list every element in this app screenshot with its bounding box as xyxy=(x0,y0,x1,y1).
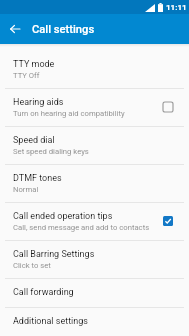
staticText: 11:11 xyxy=(166,3,187,12)
staticText: Call ended operation tips xyxy=(13,211,113,222)
staticText: Call Barring Settings xyxy=(13,249,95,260)
button[interactable]: Call Barring Settings xyxy=(0,241,189,279)
button[interactable]: Speed dial xyxy=(0,127,189,165)
button[interactable]: Toggle Call ended operation tips xyxy=(162,215,173,226)
button[interactable]: Additional settings xyxy=(0,308,189,336)
staticText: Call settings xyxy=(32,23,95,36)
staticText: Normal xyxy=(13,185,39,194)
staticText: Additional settings xyxy=(13,316,88,327)
button[interactable]: Toggle Hearing aids xyxy=(162,101,173,112)
staticText: TTY mode xyxy=(13,59,55,70)
staticText: Turn on hearing aid compatibility xyxy=(13,109,125,118)
staticText: Set speed dialing keys xyxy=(13,147,89,156)
staticText: TTY Off xyxy=(13,71,40,80)
button[interactable]: DTMF tones xyxy=(0,165,189,203)
button[interactable]: Call forwarding xyxy=(0,279,189,308)
staticText: Hearing aids xyxy=(13,97,64,108)
staticText: Speed dial xyxy=(13,135,55,146)
staticText: Call, send message and add to contacts xyxy=(13,223,150,232)
staticText: Click to set xyxy=(13,261,51,270)
button[interactable]: Back xyxy=(0,14,30,44)
staticText: DTMF tones xyxy=(13,173,62,184)
button[interactable]: TTY mode xyxy=(0,51,189,89)
staticText: Call forwarding xyxy=(13,287,74,298)
button[interactable]: Hearing aids xyxy=(0,89,189,127)
button[interactable]: Call ended operation tips xyxy=(0,203,189,241)
